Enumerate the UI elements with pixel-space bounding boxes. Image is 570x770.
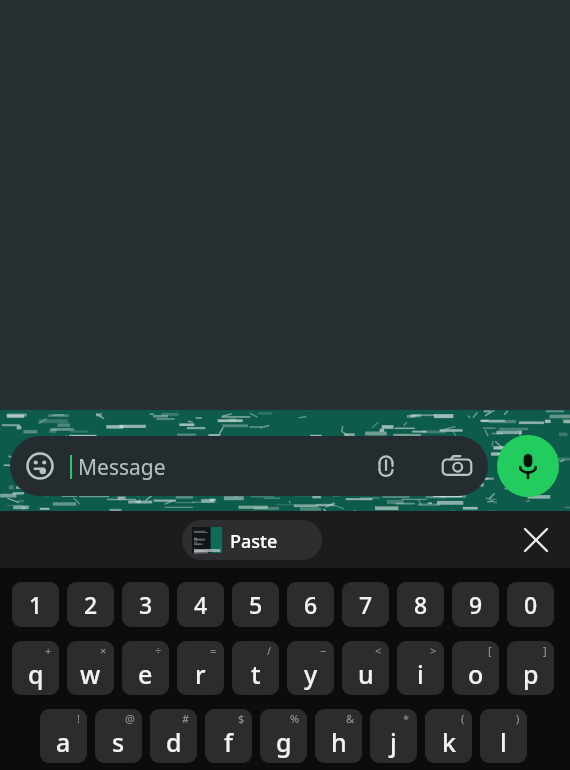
staticText: y — [304, 657, 318, 691]
staticText: − — [320, 643, 327, 658]
staticText: q — [28, 657, 44, 691]
staticText: ÷ — [155, 643, 162, 658]
button[interactable]: Camera — [440, 450, 474, 484]
staticText: Paste — [230, 529, 278, 554]
button[interactable]: Emoji — [10, 436, 488, 496]
button[interactable]: t — [232, 641, 279, 695]
button[interactable]: 6 — [287, 582, 334, 627]
staticText: 1 — [29, 589, 43, 620]
button[interactable]: 4 — [177, 582, 224, 627]
staticText: / — [267, 643, 272, 658]
staticText: Message — [78, 453, 166, 482]
staticText: g — [276, 725, 292, 759]
button[interactable]: 5 — [232, 582, 279, 627]
button[interactable]: f — [205, 709, 252, 763]
staticText: h — [331, 725, 347, 759]
button[interactable]: 8 — [397, 582, 444, 627]
button[interactable]: o — [452, 641, 499, 695]
staticText: j — [390, 725, 397, 759]
staticText: 5 — [249, 589, 263, 620]
button[interactable]: a — [40, 709, 87, 763]
button[interactable]: i — [397, 641, 444, 695]
button[interactable]: Paste — [182, 520, 322, 560]
button[interactable]: 7 — [342, 582, 389, 627]
staticText: ( — [461, 711, 465, 726]
button[interactable]: u — [342, 641, 389, 695]
staticText: × — [100, 643, 107, 658]
staticText: # — [182, 711, 190, 726]
staticText: f — [224, 725, 233, 759]
staticText: k — [442, 725, 456, 759]
button[interactable]: 9 — [452, 582, 499, 627]
staticText: [ — [488, 643, 492, 658]
staticText: ] — [543, 643, 547, 658]
staticText: 3 — [139, 589, 153, 620]
staticText: w — [80, 657, 101, 691]
staticText: ! — [77, 711, 80, 726]
staticText: 2 — [84, 589, 98, 620]
staticText: $ — [238, 711, 245, 726]
button[interactable]: q — [12, 641, 59, 695]
button[interactable]: 3 — [122, 582, 169, 627]
button[interactable]: g — [260, 709, 307, 763]
staticText: & — [346, 711, 355, 726]
other: Emoji — [26, 452, 54, 480]
staticText: 6 — [304, 589, 318, 620]
button[interactable]: s — [95, 709, 142, 763]
staticText: % — [290, 711, 300, 726]
button[interactable]: r — [177, 641, 224, 695]
staticText: d — [166, 725, 182, 759]
staticText: 8 — [414, 589, 428, 620]
button[interactable]: l — [480, 709, 527, 763]
button[interactable]: e — [122, 641, 169, 695]
staticText: p — [523, 657, 539, 691]
button[interactable]: y — [287, 641, 334, 695]
staticText: 7 — [359, 589, 373, 620]
staticText: o — [468, 657, 484, 691]
button[interactable]: 2 — [67, 582, 114, 627]
button[interactable]: k — [425, 709, 472, 763]
staticText: i — [417, 657, 424, 691]
staticText: t — [251, 657, 261, 691]
button[interactable]: w — [67, 641, 114, 695]
staticText: > — [430, 643, 437, 658]
staticText: u — [358, 657, 374, 691]
button[interactable]: 0 — [507, 582, 554, 627]
staticText: * — [403, 711, 410, 726]
staticText: < — [375, 643, 382, 658]
staticText: s — [112, 725, 125, 759]
button[interactable]: j — [370, 709, 417, 763]
staticText: e — [138, 657, 153, 691]
button[interactable]: Close — [513, 517, 559, 563]
button[interactable]: h — [315, 709, 362, 763]
staticText: = — [210, 643, 217, 658]
button[interactable]: Voice message — [497, 435, 559, 497]
staticText: r — [195, 657, 206, 691]
staticText: + — [45, 643, 52, 658]
staticText: 0 — [524, 589, 538, 620]
button[interactable]: p — [507, 641, 554, 695]
staticText: 4 — [194, 589, 208, 620]
staticText: @ — [125, 711, 135, 726]
button[interactable]: d — [150, 709, 197, 763]
button[interactable]: Attach — [370, 450, 402, 482]
staticText: l — [500, 725, 507, 759]
button[interactable]: 1 — [12, 582, 59, 627]
staticText: 9 — [469, 589, 483, 620]
staticText: a — [56, 725, 71, 759]
staticText: ) — [516, 711, 520, 726]
